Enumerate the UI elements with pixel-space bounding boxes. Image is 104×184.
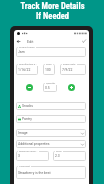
staticText: Minimum quan... — [19, 150, 38, 153]
button[interactable]: Snacks — [16, 102, 86, 110]
button[interactable]: Jam — [16, 47, 86, 57]
button[interactable]: Decrease quantity — [26, 84, 33, 91]
button[interactable]: Image — [16, 129, 86, 137]
staticText: Image — [18, 131, 28, 135]
staticText: 3 — [18, 154, 20, 158]
staticText: If Needed — [36, 11, 69, 21]
button[interactable]: Strawberry is the best — [16, 166, 86, 179]
button[interactable]: Pantry — [16, 115, 86, 123]
button[interactable]: 1/16/22 — [16, 64, 38, 75]
staticText: 2.3 — [55, 154, 60, 158]
staticText: 7/9/22 — [62, 68, 73, 72]
staticText: Price — [56, 150, 62, 153]
staticText: Track More Details — [20, 1, 85, 11]
staticText: Snacks — [22, 104, 33, 108]
staticText: Additional properties — [18, 142, 50, 146]
button[interactable]: 0.5 — [43, 83, 57, 92]
staticText: Time — [46, 63, 52, 66]
staticText: Strawberry is the best — [18, 171, 51, 175]
staticText: Pantry — [22, 117, 32, 121]
staticText: Manufacture d... — [19, 63, 38, 66]
staticText: Edit — [27, 39, 34, 43]
button[interactable]: 100 — [43, 64, 55, 75]
staticText: Quantity — [46, 82, 56, 85]
staticText: 1/16/22 — [18, 68, 31, 72]
staticText: 100 — [45, 68, 51, 72]
button[interactable]: 3 — [16, 151, 49, 161]
button[interactable]: Additional properties — [16, 140, 86, 148]
button[interactable]: Increase quantity — [68, 84, 75, 91]
staticText: Jam — [18, 50, 25, 54]
staticText: Comment — [19, 165, 30, 168]
button[interactable]: Save — [81, 38, 87, 44]
button[interactable]: Back — [15, 38, 21, 44]
staticText: Product name — [19, 46, 35, 49]
staticText: 0.5 — [45, 86, 50, 90]
button[interactable]: 2.3 — [53, 151, 86, 161]
button[interactable]: 7/9/22 — [60, 64, 86, 75]
staticText: Expiry date — [63, 63, 76, 66]
